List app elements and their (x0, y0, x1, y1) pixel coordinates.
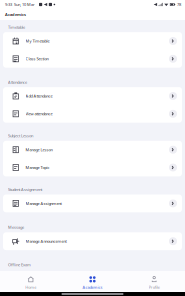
staticText: Class Section (25, 56, 48, 61)
staticText: View attendance (25, 111, 52, 116)
button[interactable]: Class Section (3, 50, 182, 68)
button[interactable]: Manage Announcement (3, 232, 182, 250)
button[interactable]: Manage Topic (3, 159, 182, 176)
staticText: Attendance (8, 79, 27, 85)
staticText: Academics (82, 285, 102, 290)
staticText: Manage Assignment (25, 201, 61, 206)
staticText: Manage Topic (25, 165, 49, 170)
staticText: My Timetable (25, 38, 49, 44)
staticText: Add Attendance (25, 93, 52, 99)
staticText: Subject Lesson (8, 133, 33, 138)
staticText: Timetable (8, 24, 25, 30)
staticText: 78 (177, 2, 181, 7)
button[interactable]: Home (0, 271, 62, 292)
button[interactable]: My Timetable (3, 32, 182, 50)
staticText: Offline Exam (8, 262, 31, 267)
staticText: Manage Lesson (25, 147, 52, 152)
staticText: 9:33 Sun, 10 Mar (5, 2, 35, 7)
staticText: Manage Announcement (25, 238, 66, 244)
staticText: Student Assignment (8, 187, 42, 192)
staticText: Profile (149, 285, 160, 290)
staticText: Academics (5, 12, 26, 17)
button[interactable]: Academics (62, 271, 123, 292)
button[interactable]: View attendance (3, 105, 182, 123)
staticText: Home (25, 285, 36, 290)
button[interactable]: Profile (123, 271, 185, 292)
button[interactable]: Add Attendance (3, 87, 182, 105)
button[interactable]: Manage Assignment (3, 194, 182, 212)
staticText: Message (8, 225, 24, 230)
button[interactable]: Manage Lesson (3, 141, 182, 159)
